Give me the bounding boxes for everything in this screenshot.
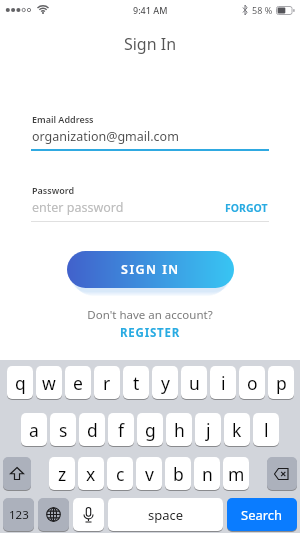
staticText: SIGN IN <box>121 261 180 278</box>
staticText: m <box>228 462 245 486</box>
button[interactable]: SIGN IN <box>67 251 234 288</box>
button[interactable]: h <box>166 413 192 447</box>
button[interactable]: r <box>94 366 120 400</box>
staticText: w <box>42 371 56 395</box>
staticText: i <box>221 371 226 395</box>
button[interactable]: g <box>137 413 163 447</box>
button[interactable]: m <box>223 457 249 491</box>
button[interactable]: n <box>194 457 220 491</box>
button[interactable]: space <box>108 498 223 532</box>
staticText: 9:41 AM <box>133 4 168 16</box>
button[interactable] <box>38 498 69 532</box>
staticText: j <box>206 418 211 442</box>
button[interactable]: o <box>239 366 265 400</box>
button[interactable]: x <box>78 457 104 491</box>
button[interactable]: w <box>36 366 62 400</box>
staticText: g <box>145 418 156 442</box>
staticText: k <box>232 418 242 442</box>
button[interactable] <box>3 457 31 491</box>
staticText: x <box>86 462 96 486</box>
button[interactable]: FORGOT <box>225 201 268 215</box>
button[interactable]: a <box>21 413 47 447</box>
button[interactable]: l <box>253 413 279 447</box>
staticText: Search <box>241 506 283 524</box>
button[interactable]: s <box>50 413 76 447</box>
button[interactable]: j <box>195 413 221 447</box>
button[interactable]: u <box>181 366 207 400</box>
button[interactable]: 123 <box>3 498 34 532</box>
staticText: 123 <box>9 507 29 523</box>
staticText: q <box>15 371 26 395</box>
button[interactable]: k <box>224 413 250 447</box>
button[interactable]: e <box>65 366 91 400</box>
staticText: Sign In <box>0 33 300 55</box>
button[interactable]: c <box>107 457 133 491</box>
staticText: e <box>73 371 83 395</box>
staticText: u <box>189 371 200 395</box>
staticText: c <box>116 462 125 486</box>
staticText: y <box>161 371 170 395</box>
staticText: organization@gmail.com <box>32 128 179 145</box>
staticText: t <box>133 371 140 395</box>
staticText: Don't have an account? <box>0 307 300 323</box>
button[interactable]: REGISTER <box>0 325 300 341</box>
staticText: s <box>59 418 68 442</box>
staticText: r <box>103 371 111 395</box>
button[interactable] <box>267 457 297 491</box>
staticText: h <box>174 418 185 442</box>
button[interactable]: i <box>210 366 236 400</box>
button[interactable] <box>73 498 104 532</box>
staticText: p <box>276 371 287 395</box>
staticText: Email Address <box>32 113 94 125</box>
staticText: enter password <box>32 199 225 216</box>
staticText: b <box>173 462 184 486</box>
button[interactable]: p <box>268 366 294 400</box>
button[interactable]: y <box>152 366 178 400</box>
button[interactable]: b <box>165 457 191 491</box>
button[interactable]: t <box>123 366 149 400</box>
staticText: 58 % <box>252 4 273 16</box>
button[interactable]: f <box>108 413 134 447</box>
button[interactable]: Search <box>227 498 297 532</box>
staticText: n <box>202 462 213 486</box>
button[interactable]: q <box>7 366 33 400</box>
staticText: space <box>148 506 184 524</box>
staticText: o <box>247 371 258 395</box>
staticText: v <box>145 462 154 486</box>
staticText: Password <box>32 184 75 196</box>
staticText: a <box>29 418 39 442</box>
staticText: f <box>118 418 125 442</box>
staticText: z <box>58 462 67 486</box>
button[interactable]: v <box>136 457 162 491</box>
staticText: l <box>264 418 269 442</box>
staticText: d <box>87 418 98 442</box>
button[interactable]: z <box>49 457 75 491</box>
button[interactable]: d <box>79 413 105 447</box>
